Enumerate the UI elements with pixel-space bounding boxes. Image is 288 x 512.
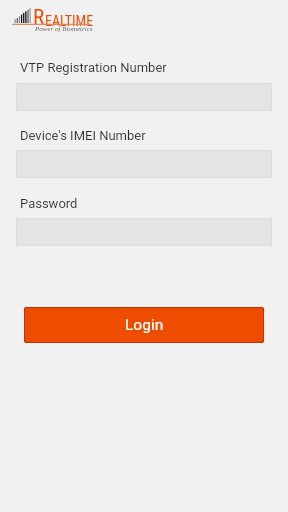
button[interactable]: Login bbox=[24, 307, 264, 343]
staticText: EALTIME bbox=[45, 13, 94, 29]
staticText: Login bbox=[125, 316, 164, 334]
staticText: R bbox=[33, 5, 45, 30]
staticText: Device's IMEI Number bbox=[20, 128, 146, 143]
staticText: Password bbox=[20, 196, 78, 211]
staticText: VTP Registration Number bbox=[20, 60, 167, 75]
staticText: Power of Biometrics bbox=[35, 25, 93, 33]
